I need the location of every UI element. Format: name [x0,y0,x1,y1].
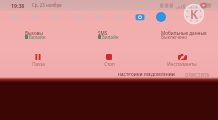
button[interactable]: SMS [98,27,160,41]
staticText: Инструменты [167,61,197,66]
button[interactable]: Bluetooth [156,12,166,22]
staticText: Пауза [32,61,45,66]
staticText: Ср, 23 ноября [32,2,62,8]
staticText: Мобильные данные [161,30,207,36]
button[interactable]: Инструменты [156,54,208,66]
staticText: 19:38 [11,2,25,9]
button[interactable]: Вызовы [25,27,98,41]
staticText: K [190,6,198,22]
button[interactable]: Пауза [13,54,63,66]
staticText: ОЧИСТИТЬ [185,72,210,78]
button[interactable]: Do not disturb [95,13,104,22]
staticText: Билайн [29,34,46,40]
button[interactable]: Screen mirroring [114,13,123,22]
button[interactable]: НАСТРОЙКИ УВЕДОМЛЕНИЙ [113,72,180,77]
staticText: НАСТРОЙКИ УВЕДОМЛЕНИЙ [118,72,175,77]
staticText: Выключено [161,34,188,40]
button[interactable]: Screen recorder [75,13,84,22]
staticText: Стоп [104,61,115,66]
staticText: Билайн [102,34,119,40]
button[interactable]: Sound [31,13,40,22]
button[interactable]: Мобильные данные [161,27,208,41]
button[interactable]: Стоп [85,54,133,66]
button[interactable]: Camera [135,12,145,22]
staticText: SMS [98,30,108,36]
button[interactable]: Wi-Fi [11,13,20,22]
staticText: Вызовы [25,30,43,36]
button[interactable]: Volume [50,13,59,22]
button[interactable]: ОЧИСТИТЬ [180,72,215,78]
